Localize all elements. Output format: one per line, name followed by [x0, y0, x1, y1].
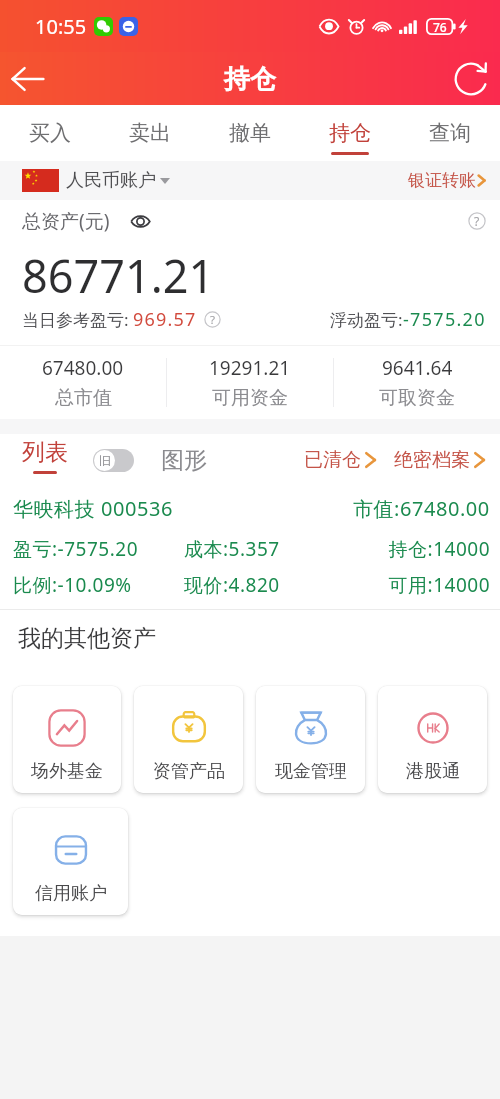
button[interactable]: 场外基金: [13, 686, 121, 793]
staticText: 港股通: [406, 760, 460, 783]
button[interactable]: 华映科技 000536: [0, 486, 500, 609]
staticText: ?: [210, 312, 216, 328]
staticText: 买入: [29, 120, 71, 146]
button[interactable]: 港股通: [378, 686, 487, 793]
button[interactable]: 撤单: [200, 105, 300, 161]
staticText: 比例:-10.09%: [13, 572, 184, 598]
staticText: 持仓: [329, 120, 371, 146]
button[interactable]: 67480.00: [0, 346, 166, 419]
staticText: 我的其他资产: [18, 624, 156, 653]
button[interactable]: Switch to old style: [93, 449, 134, 472]
staticText: 19291.21: [209, 355, 291, 381]
button[interactable]: 人民币账户: [22, 169, 170, 192]
staticText: ?: [474, 213, 480, 230]
staticText: 9641.64: [382, 355, 453, 381]
staticText: 当日参考盈亏:: [22, 308, 133, 331]
staticText: 86771.21: [22, 245, 215, 306]
button[interactable]: 持仓: [300, 105, 400, 161]
staticText: 67480.00: [42, 355, 124, 381]
button[interactable]: 已清仓: [304, 448, 377, 472]
staticText: 10:55: [35, 13, 87, 40]
button[interactable]: 绝密档案: [394, 448, 486, 472]
staticText: 现价:4.820: [184, 572, 388, 598]
staticText: 成本:5.357: [184, 536, 388, 562]
staticText: 资管产品: [153, 760, 225, 783]
staticText: 可用资金: [212, 386, 288, 410]
button[interactable]: 9641.64: [334, 346, 500, 419]
button[interactable]: Toggle balance visibility: [128, 209, 152, 233]
staticText: 撤单: [229, 120, 271, 146]
staticText: 76: [433, 19, 447, 35]
staticText: 现金管理: [275, 760, 347, 783]
staticText: 列表: [22, 438, 68, 467]
staticText: 华映科技 000536: [13, 495, 173, 522]
button[interactable]: Help: [204, 311, 221, 328]
button[interactable]: Refresh: [447, 55, 495, 103]
button[interactable]: 卖出: [100, 105, 200, 161]
staticText: 已清仓: [304, 448, 361, 472]
staticText: 人民币账户: [66, 169, 156, 192]
staticText: 查询: [429, 120, 471, 146]
button[interactable]: 现金管理: [256, 686, 365, 793]
staticText: 持仓: [224, 63, 276, 96]
staticText: 旧: [99, 453, 111, 468]
button[interactable]: 银证转账: [408, 170, 486, 191]
staticText: 浮动盈亏:: [330, 308, 403, 331]
staticText: 信用账户: [35, 882, 107, 905]
staticText: 盈亏:-7575.20: [13, 536, 184, 562]
button[interactable]: 查询: [400, 105, 500, 161]
staticText: 市值:67480.00: [353, 495, 490, 522]
staticText: 持仓:14000: [388, 536, 490, 562]
staticText: 可用:14000: [388, 572, 490, 598]
staticText: 绝密档案: [394, 448, 470, 472]
staticText: -7575.20: [403, 307, 486, 332]
staticText: 卖出: [129, 120, 171, 146]
button[interactable]: 列表: [22, 438, 68, 482]
button[interactable]: 信用账户: [13, 808, 128, 915]
button[interactable]: 买入: [0, 105, 100, 161]
button[interactable]: Help: [468, 212, 486, 230]
button[interactable]: 19291.21: [167, 346, 333, 419]
staticText: 969.57: [133, 307, 197, 332]
staticText: 可取资金: [379, 386, 455, 410]
button[interactable]: Back: [4, 55, 52, 103]
staticText: 总市值: [55, 386, 112, 410]
staticText: 银证转账: [408, 170, 476, 191]
button[interactable]: 图形: [161, 446, 207, 475]
button[interactable]: 资管产品: [134, 686, 243, 793]
staticText: 场外基金: [31, 760, 103, 783]
staticText: 总资产(元): [22, 208, 110, 234]
